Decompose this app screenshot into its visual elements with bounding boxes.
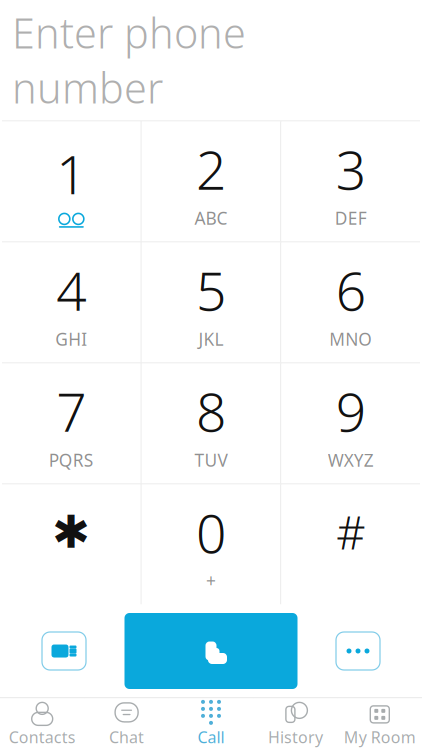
button[interactable]: 6 — [281, 242, 420, 362]
staticText: TUV — [194, 448, 227, 471]
staticText: 3 — [336, 134, 366, 204]
button[interactable]: 8 — [142, 363, 280, 483]
staticText: 6 — [336, 255, 366, 325]
staticText: Enter phone number — [12, 5, 246, 115]
button[interactable]: # — [281, 484, 420, 604]
button[interactable]: ✱ — [2, 484, 141, 604]
button[interactable]: More options — [336, 632, 380, 670]
staticText: Contacts — [9, 726, 76, 748]
button[interactable]: 9 — [281, 363, 420, 483]
staticText: JKL — [198, 327, 223, 350]
staticText: My Room — [344, 726, 416, 748]
staticText: ✱ — [52, 506, 90, 558]
staticText: MNO — [329, 327, 372, 350]
staticText: 4 — [56, 255, 86, 325]
button[interactable]: Call — [124, 613, 297, 689]
staticText: History — [268, 726, 323, 748]
staticText: 9 — [336, 376, 366, 446]
button[interactable]: Video call — [42, 632, 86, 670]
staticText: # — [336, 502, 365, 562]
staticText: DEF — [335, 206, 367, 229]
staticText: + — [206, 569, 216, 592]
staticText: 8 — [196, 376, 226, 446]
button[interactable]: 5 — [142, 242, 280, 362]
button[interactable]: 1 — [2, 121, 141, 241]
button[interactable]: Chat — [84, 698, 169, 750]
staticText: WXYZ — [328, 448, 374, 471]
button[interactable]: History — [253, 698, 338, 750]
staticText: ABC — [194, 206, 227, 229]
button[interactable]: Call — [169, 698, 253, 750]
staticText: 7 — [56, 376, 86, 446]
staticText: 5 — [196, 255, 226, 325]
button[interactable]: 0 — [142, 484, 280, 604]
staticText: 2 — [196, 134, 226, 204]
staticText: Call — [197, 726, 224, 748]
staticText: Chat — [109, 726, 144, 748]
button[interactable]: 4 — [2, 242, 141, 362]
button[interactable]: Contacts — [0, 698, 84, 750]
staticText: 1 — [56, 138, 86, 209]
button[interactable]: 7 — [2, 363, 141, 483]
button[interactable]: My Room — [338, 698, 422, 750]
staticText: PQRS — [49, 448, 94, 471]
staticText: 0 — [196, 497, 226, 568]
button[interactable]: 2 — [142, 121, 280, 241]
staticText: GHI — [55, 327, 87, 350]
button[interactable]: 3 — [281, 121, 420, 241]
